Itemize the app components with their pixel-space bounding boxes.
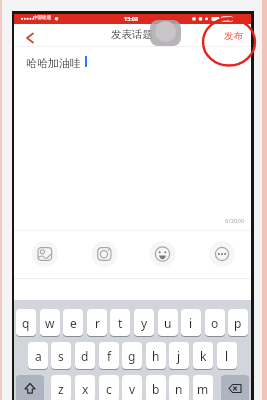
button[interactable]: [16, 375, 44, 400]
button[interactable]: 发布: [217, 28, 249, 44]
staticText: x: [82, 381, 89, 397]
button[interactable]: d: [75, 342, 95, 369]
button[interactable]: g: [122, 342, 142, 369]
button[interactable]: h: [146, 342, 166, 369]
staticText: s: [58, 348, 64, 364]
button[interactable]: v: [122, 375, 142, 400]
staticText: k: [200, 348, 207, 364]
button[interactable]: b: [146, 375, 166, 400]
button[interactable]: z: [51, 375, 71, 400]
button[interactable]: r: [87, 309, 107, 336]
staticText: f: [107, 348, 112, 364]
button[interactable]: c: [99, 375, 119, 400]
button[interactable]: f: [99, 342, 119, 369]
button[interactable]: t: [110, 309, 130, 336]
staticText: e: [70, 315, 77, 331]
button[interactable]: o: [205, 309, 225, 336]
staticText: 发表话题: [108, 28, 156, 41]
button[interactable]: n: [169, 375, 189, 400]
staticText: z: [58, 381, 64, 397]
staticText: g: [128, 348, 136, 364]
button[interactable]: u: [158, 309, 178, 336]
staticText: j: [177, 348, 181, 364]
staticText: q: [22, 315, 30, 331]
staticText: i: [189, 315, 193, 331]
staticText: a: [35, 348, 42, 364]
staticText: 发布: [224, 30, 243, 42]
button[interactable]: s: [51, 342, 71, 369]
button[interactable]: l: [217, 342, 237, 369]
staticText: o: [211, 315, 219, 331]
button[interactable]: a: [28, 342, 48, 369]
button[interactable]: i: [181, 309, 201, 336]
button[interactable]: [24, 32, 36, 44]
staticText: t: [118, 315, 123, 331]
staticText: d: [81, 348, 89, 364]
staticText: m: [197, 381, 209, 397]
button[interactable]: p: [228, 309, 248, 336]
button[interactable]: k: [193, 342, 213, 369]
button[interactable]: [221, 375, 249, 400]
button[interactable]: [208, 240, 236, 268]
button[interactable]: [90, 240, 118, 268]
staticText: p: [234, 315, 242, 331]
button[interactable]: x: [75, 375, 95, 400]
staticText: w: [45, 315, 55, 331]
staticText: 中国联通: [33, 15, 51, 21]
staticText: n: [175, 381, 183, 397]
staticText: y: [141, 315, 148, 331]
button[interactable]: m: [193, 375, 213, 400]
staticText: 15:08: [124, 15, 139, 22]
staticText: u: [164, 315, 172, 331]
button[interactable]: j: [169, 342, 189, 369]
button[interactable]: w: [40, 309, 60, 336]
button[interactable]: q: [16, 309, 36, 336]
staticText: 哈哈加油哇: [26, 56, 81, 70]
button[interactable]: y: [134, 309, 154, 336]
button[interactable]: e: [63, 309, 83, 336]
staticText: b: [152, 381, 160, 397]
button[interactable]: [31, 240, 59, 268]
staticText: h: [152, 348, 160, 364]
button[interactable]: [149, 240, 177, 268]
staticText: c: [106, 381, 112, 397]
staticText: v: [129, 381, 136, 397]
staticText: r: [95, 315, 100, 331]
staticText: 6/2000: [225, 217, 245, 225]
staticText: l: [225, 348, 229, 364]
